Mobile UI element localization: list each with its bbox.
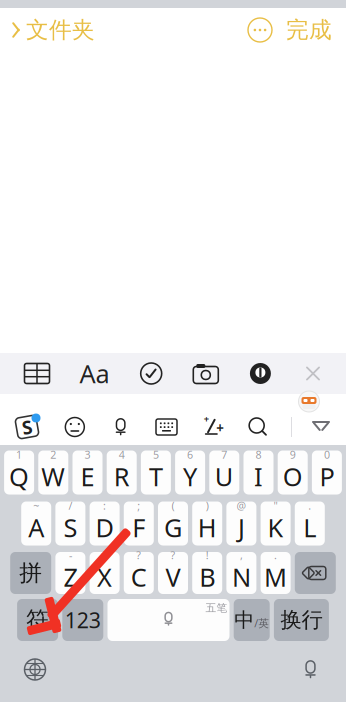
button[interactable]: # — [90, 552, 120, 594]
button[interactable]: ! — [192, 552, 222, 594]
button[interactable]: 1 — [4, 450, 34, 494]
button[interactable]: 2 — [38, 450, 68, 494]
staticText: 1 — [16, 448, 22, 462]
button[interactable]: 7 — [209, 450, 239, 494]
button[interactable]: Delete — [295, 552, 336, 594]
staticText: - — [69, 548, 72, 562]
staticText: O — [283, 460, 303, 493]
staticText: D — [96, 511, 114, 544]
staticText: P — [319, 460, 334, 493]
staticText: 符 — [26, 606, 49, 634]
staticText: 完成 — [286, 16, 332, 44]
staticText: . — [308, 499, 311, 513]
button[interactable]: 0 — [312, 450, 342, 494]
button[interactable]: Dictation — [297, 656, 324, 683]
button[interactable]: ( — [158, 501, 188, 545]
button[interactable]: : — [90, 501, 120, 545]
staticText: 换行 — [280, 607, 322, 633]
staticText: / — [68, 499, 72, 513]
button[interactable]: . — [295, 501, 325, 545]
staticText: ( — [171, 499, 174, 513]
staticText: ? — [170, 548, 175, 562]
staticText: V — [165, 560, 180, 594]
button[interactable]: 拼 — [10, 552, 51, 594]
staticText: U — [215, 460, 234, 493]
button[interactable]: 123 — [62, 599, 103, 641]
button[interactable]: ~ — [21, 501, 51, 545]
staticText: 5 — [153, 448, 159, 462]
button[interactable]: Switch keyboard — [22, 656, 48, 682]
staticText: J — [238, 511, 245, 544]
button[interactable]: Space — [107, 599, 229, 641]
button[interactable]: , — [226, 552, 256, 594]
staticText: 3 — [84, 448, 90, 462]
button[interactable]: . — [261, 552, 291, 594]
button[interactable]: 6 — [175, 450, 205, 494]
staticText: A — [28, 511, 44, 544]
staticText: L — [303, 511, 316, 544]
button[interactable]: ) — [192, 501, 222, 545]
button[interactable]: 8 — [243, 450, 273, 494]
staticText: M — [264, 560, 287, 594]
button[interactable]: 文件夹 — [0, 8, 95, 52]
staticText: # — [101, 548, 108, 562]
staticText: N — [232, 560, 251, 594]
button[interactable]: @ — [226, 501, 256, 545]
button[interactable]: Close toolbar — [300, 360, 326, 386]
staticText: . — [274, 548, 277, 562]
button[interactable]: 完成 — [272, 8, 346, 52]
button[interactable]: Emoji — [62, 414, 88, 440]
staticText: ! — [206, 548, 209, 562]
staticText: H — [198, 511, 217, 544]
button[interactable]: Handwriting — [199, 414, 225, 440]
staticText: + — [216, 419, 224, 437]
staticText: + — [204, 413, 209, 425]
staticText: ; — [137, 499, 140, 513]
staticText: /英 — [254, 616, 269, 630]
staticText: 五笔 — [205, 601, 227, 614]
button[interactable]: Insert table — [22, 360, 52, 386]
button[interactable]: 中 — [234, 599, 270, 641]
button[interactable]: Text format — [78, 358, 112, 388]
button[interactable]: 3 — [72, 450, 102, 494]
button[interactable]: ; — [124, 501, 154, 545]
button[interactable]: Checklist — [137, 360, 165, 386]
staticText: ~ — [33, 499, 39, 513]
button[interactable]: Camera — [191, 360, 221, 386]
staticText: I — [254, 460, 263, 493]
staticText: B — [199, 560, 215, 594]
staticText: C — [131, 560, 147, 594]
staticText: 文件夹 — [26, 16, 95, 44]
staticText: Q — [9, 460, 29, 493]
staticText: ? — [136, 548, 141, 562]
button[interactable]: More options — [248, 10, 272, 50]
button[interactable]: Search — [245, 414, 271, 440]
button[interactable]: Hide keyboard — [308, 415, 334, 439]
button[interactable]: Voice input — [108, 414, 134, 440]
button[interactable]: 符 — [17, 599, 58, 641]
button[interactable]: Keyboard layout — [153, 415, 179, 439]
button[interactable]: 4 — [107, 450, 137, 494]
staticText: 8 — [255, 448, 261, 462]
staticText: K — [268, 511, 284, 544]
staticText: , — [240, 548, 243, 562]
staticText: 6 — [187, 448, 193, 462]
staticText: 4 — [119, 448, 125, 462]
staticText: S — [63, 511, 77, 544]
button[interactable]: - — [55, 552, 85, 594]
button[interactable]: / — [55, 501, 85, 545]
staticText: T — [149, 460, 163, 493]
staticText: Y — [183, 460, 197, 493]
button[interactable]: Sogou input settings — [12, 413, 42, 441]
staticText: X — [97, 560, 112, 594]
staticText: Aa — [80, 357, 110, 390]
staticText: 中 — [234, 608, 254, 632]
button[interactable]: ? — [124, 552, 154, 594]
button[interactable]: ? — [158, 552, 188, 594]
button[interactable]: 9 — [278, 450, 308, 494]
button[interactable]: Markup — [246, 360, 274, 386]
button[interactable]: " — [261, 501, 291, 545]
staticText: ) — [206, 499, 209, 513]
button[interactable]: 换行 — [274, 599, 329, 641]
button[interactable]: 5 — [141, 450, 171, 494]
